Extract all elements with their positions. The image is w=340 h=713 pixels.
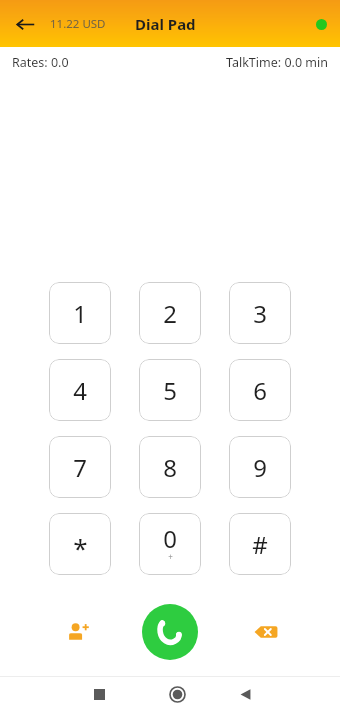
button[interactable]: 9: [229, 436, 291, 498]
staticText: 3: [253, 297, 267, 330]
staticText: *: [73, 530, 88, 565]
staticText: 5: [163, 374, 177, 407]
staticText: #: [252, 528, 268, 561]
button[interactable]: 5: [139, 359, 201, 421]
staticText: Dial Pad: [135, 14, 196, 34]
button[interactable]: Backspace: [246, 612, 286, 652]
button[interactable]: *: [49, 513, 111, 575]
button[interactable]: Back: [8, 7, 42, 41]
button[interactable]: Back: [224, 676, 266, 713]
staticText: 1: [73, 297, 87, 330]
staticText: 11.22 USD: [50, 16, 106, 32]
staticText: 0: [163, 522, 177, 555]
staticText: 2: [163, 297, 177, 330]
button[interactable]: Call: [142, 604, 198, 660]
staticText: 6: [253, 374, 267, 407]
button[interactable]: #: [229, 513, 291, 575]
staticText: +: [168, 551, 173, 562]
button[interactable]: 6: [229, 359, 291, 421]
staticText: 7: [73, 451, 87, 484]
button[interactable]: Connection status: [308, 11, 334, 37]
button[interactable]: 3: [229, 282, 291, 344]
staticText: 4: [73, 374, 87, 407]
staticText: TalkTime: 0.0 min: [226, 54, 328, 71]
staticText: 9: [253, 451, 267, 484]
staticText: 8: [163, 451, 177, 484]
button[interactable]: 1: [49, 282, 111, 344]
staticText: Rates: 0.0: [12, 54, 69, 71]
button[interactable]: Add contact: [58, 612, 98, 652]
button[interactable]: 7: [49, 436, 111, 498]
button[interactable]: 8: [139, 436, 201, 498]
button[interactable]: 4: [49, 359, 111, 421]
button[interactable]: Home: [156, 676, 198, 713]
button[interactable]: 0: [139, 513, 201, 575]
button[interactable]: Recent apps: [78, 676, 120, 713]
button[interactable]: 2: [139, 282, 201, 344]
